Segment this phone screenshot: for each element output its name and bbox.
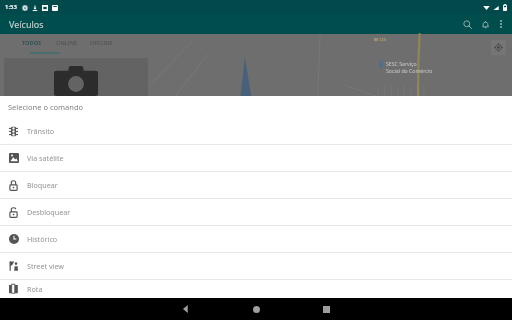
button[interactable]: Desbloquear bbox=[0, 199, 512, 225]
button[interactable]: Trânsito bbox=[0, 118, 512, 144]
staticText: Selecione o comando bbox=[8, 102, 84, 112]
staticText: BR 123 bbox=[374, 37, 386, 42]
staticText: Bloquear bbox=[27, 180, 58, 190]
staticText: Street view bbox=[27, 261, 65, 271]
staticText: Trânsito bbox=[27, 126, 55, 136]
staticText: 1:53 bbox=[5, 3, 17, 11]
button[interactable]: More options bbox=[494, 17, 508, 31]
staticText: Veículos bbox=[9, 18, 44, 30]
button[interactable]: Notifications bbox=[476, 15, 494, 33]
button[interactable]: Recent apps bbox=[307, 298, 345, 320]
staticText: SESC Serviço bbox=[386, 60, 417, 67]
button[interactable]: Histórico bbox=[0, 226, 512, 252]
button[interactable]: My location bbox=[491, 40, 506, 55]
button[interactable]: Via satélite bbox=[0, 145, 512, 171]
button[interactable]: ONLINE bbox=[56, 39, 78, 47]
staticText: ONLINE bbox=[56, 39, 78, 47]
button[interactable]: Street view bbox=[0, 253, 512, 279]
button[interactable]: TODOS bbox=[22, 39, 42, 47]
staticText: Histórico bbox=[27, 234, 58, 244]
button[interactable]: Bloquear bbox=[0, 172, 512, 198]
staticText: TODOS bbox=[22, 39, 42, 47]
staticText: Social do Comércio bbox=[386, 67, 433, 74]
button[interactable]: Back bbox=[167, 298, 205, 320]
button[interactable]: Home bbox=[237, 298, 275, 320]
staticText: Via satélite bbox=[27, 153, 64, 163]
button[interactable]: Search bbox=[458, 15, 476, 33]
button[interactable]: OFFLINE bbox=[90, 39, 113, 47]
staticText: Rota bbox=[27, 284, 43, 294]
staticText: Desbloquear bbox=[27, 207, 71, 217]
button[interactable]: Rota bbox=[0, 280, 512, 298]
staticText: OFFLINE bbox=[90, 39, 113, 47]
